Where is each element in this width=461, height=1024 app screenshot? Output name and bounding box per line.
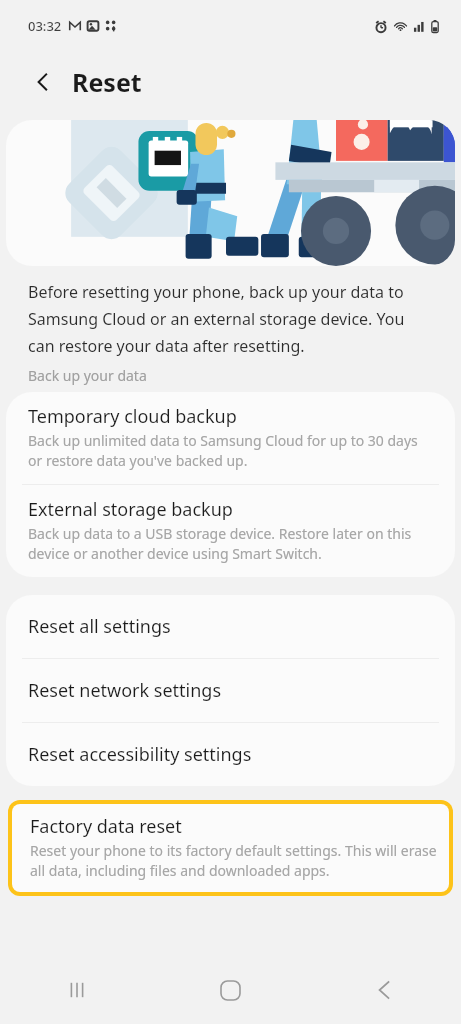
button[interactable]: Reset all settings	[6, 595, 455, 658]
staticText: Before resetting your phone, back up you…	[28, 281, 431, 357]
button[interactable]: Back	[307, 956, 461, 1024]
button[interactable]: Reset network settings	[6, 659, 455, 722]
staticText: Reset accessibility settings	[28, 742, 252, 767]
button[interactable]: Back	[22, 61, 64, 103]
staticText: Back up data to a USB storage device. Re…	[28, 524, 431, 564]
button[interactable]: Factory data reset	[12, 804, 449, 892]
button[interactable]: Home	[153, 956, 307, 1024]
staticText: Temporary cloud backup	[28, 404, 237, 429]
button[interactable]: Temporary cloud backup	[6, 392, 455, 484]
staticText: Factory data reset	[30, 814, 182, 839]
button[interactable]: Reset accessibility settings	[6, 723, 455, 786]
staticText: Reset your phone to its factory default …	[30, 841, 439, 881]
staticText: Back up unlimited data to Samsung Cloud …	[28, 431, 431, 471]
staticText: Reset	[72, 65, 142, 99]
button[interactable]: Recent apps	[0, 956, 153, 1024]
staticText: Reset all settings	[28, 614, 171, 639]
staticText: Reset network settings	[28, 678, 222, 703]
staticText: 03:32	[28, 17, 62, 35]
staticText: Back up your data	[28, 366, 147, 385]
staticText: External storage backup	[28, 497, 233, 522]
button[interactable]: External storage backup	[6, 485, 455, 577]
